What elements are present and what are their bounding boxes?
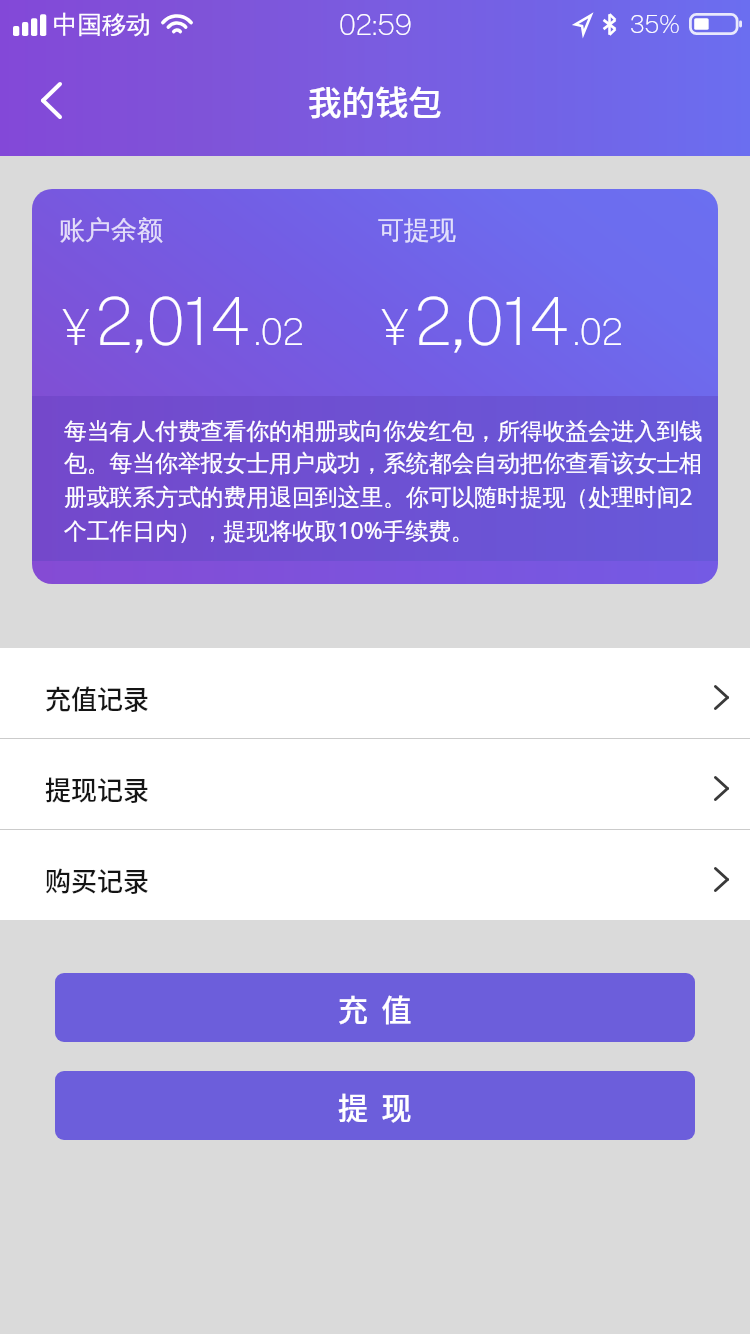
staticText: 提现记录 — [45, 770, 150, 808]
staticText: 我的钱包 — [308, 76, 442, 125]
staticText: 充 值 — [338, 986, 412, 1029]
staticText: 35% — [630, 10, 681, 38]
staticText: 账户余额 — [59, 214, 163, 247]
button[interactable]: 充 值 — [55, 973, 695, 1042]
staticText: 2,014 — [96, 282, 250, 360]
button[interactable]: 提现记录 — [0, 739, 750, 829]
staticText: 中国移动 — [53, 9, 151, 40]
staticText: ¥ — [62, 298, 90, 356]
staticText: 可提现 — [378, 214, 456, 247]
staticText: 提 现 — [338, 1084, 412, 1127]
staticText: 充值记录 — [45, 679, 150, 717]
staticText: .02 — [573, 309, 624, 354]
button[interactable]: 充值记录 — [0, 648, 750, 738]
staticText: 购买记录 — [45, 861, 150, 899]
button[interactable]: 购买记录 — [0, 830, 750, 920]
button[interactable]: 提 现 — [55, 1071, 695, 1140]
staticText: 2,014 — [415, 282, 569, 360]
staticText: 02:59 — [339, 7, 412, 41]
staticText: ¥ — [381, 298, 409, 356]
staticText: .02 — [254, 309, 305, 354]
staticText: 每当有人付费查看你的相册或向你发红包，所得收益会进入到钱包。每当你举报女士用户成… — [64, 417, 708, 545]
button[interactable]: Back — [23, 72, 79, 128]
